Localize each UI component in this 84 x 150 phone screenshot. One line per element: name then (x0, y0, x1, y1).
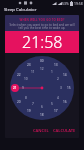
staticText: Select when you want to go to bed and we… (8, 23, 76, 27)
staticText: 19:58 (74, 1, 83, 6)
staticText: 21:58 (22, 31, 63, 53)
staticText: 5 (51, 102, 53, 106)
staticText: 10 (24, 77, 28, 81)
staticText: 9 (22, 86, 24, 90)
staticText: 17 (54, 109, 58, 113)
staticText: 11 (31, 70, 35, 74)
button[interactable]: CANCEL (31, 125, 51, 136)
staticText: 3 (60, 86, 62, 90)
staticText: 18 (40, 113, 44, 117)
staticText: CALCULATE (53, 128, 76, 133)
button[interactable]: CALCULATE (51, 125, 78, 136)
staticText: 12 (40, 67, 44, 71)
staticText: 22 (17, 73, 21, 77)
staticText: 15 (67, 86, 71, 90)
staticText: 4 (57, 96, 59, 100)
staticText: 23 (27, 63, 31, 67)
staticText: 8 (25, 96, 27, 100)
staticText: CANCEL (33, 128, 49, 133)
staticText: 19 (27, 109, 31, 113)
staticText: 7 (32, 102, 34, 106)
staticText: 14 (63, 73, 67, 77)
staticText: 16 (63, 100, 67, 104)
staticText: 2 (57, 77, 59, 81)
staticText: 6 (41, 105, 43, 109)
staticText: 13 (54, 63, 58, 67)
staticText: 53% (62, 1, 69, 6)
staticText: 21 (13, 86, 17, 90)
staticText: 1 (51, 70, 53, 74)
staticText: 00 (40, 59, 44, 63)
staticText: tell you the best time to wake up. (8, 26, 76, 30)
button[interactable]: 21:58 (5, 31, 79, 53)
staticText: 20 (17, 100, 21, 104)
staticText: Sleep Calculator (4, 6, 37, 12)
staticText: WHEN WILL YOU GO TO BED? (8, 18, 76, 22)
